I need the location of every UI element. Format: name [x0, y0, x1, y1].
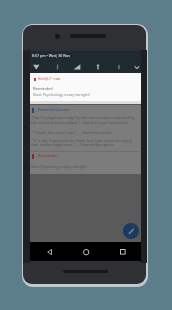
staticText: Start Psychology essay tonight! — [31, 164, 87, 169]
button[interactable] — [123, 223, 139, 239]
staticText: Favorite Quotes — [38, 107, 70, 113]
staticText: Start Psychology essay tonight! — [33, 92, 90, 97]
staticText: 8:57 pm • Wed, 30 Nov — [32, 53, 70, 58]
staticText: "It is not how much we have, but how muc… — [32, 138, 133, 143]
staticText: NotifyU! • now — [38, 76, 61, 80]
button[interactable] — [30, 51, 141, 73]
staticText: that makes happiness." —Charles Spurgeon — [31, 142, 114, 147]
staticText: the seeds that you plant." –Robert Louis… — [31, 120, 129, 126]
button[interactable] — [120, 249, 126, 255]
staticText: "I think, therefore I am." —René Descart… — [32, 130, 112, 135]
staticText: Reminder! — [33, 86, 54, 92]
button[interactable] — [83, 249, 89, 255]
button[interactable] — [47, 249, 52, 255]
button[interactable]: NotifyU! • now — [30, 73, 141, 105]
staticText: Reminder! — [38, 153, 58, 158]
staticText: "Don't judge each day by the harvest you… — [31, 115, 135, 121]
